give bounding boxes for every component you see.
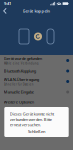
staticText: 9:41 <box>4 1 11 6</box>
staticText: Dieses Gerät konnte nicht verbunden werd… <box>10 111 54 127</box>
button[interactable]: Schließen <box>4 127 69 136</box>
staticText: Gerät wurde gefunden <box>4 56 42 61</box>
button[interactable]: Manuelle Eingabe <box>0 87 73 97</box>
button[interactable]: Weitere Optionen <box>0 97 73 107</box>
button[interactable]: Back <box>0 5 10 17</box>
staticText: WLAN-Übertragung <box>4 77 39 82</box>
staticText: Wähle eine Verbindung <box>4 62 39 65</box>
staticText: Schneller für Dateien <box>4 83 34 86</box>
staticText: Manuelle Eingabe <box>4 89 34 95</box>
button[interactable]: Bluetooth-Kopplung <box>0 66 73 76</box>
button[interactable]: WLAN-Übertragung <box>0 76 73 87</box>
staticText: Bluetooth-Kopplung <box>4 68 36 74</box>
staticText: Weitere Optionen <box>4 99 34 105</box>
staticText: Schließen <box>28 129 45 134</box>
staticText: Gerät koppeln <box>22 8 50 14</box>
button[interactable]: Gerät wurde gefunden <box>0 55 73 66</box>
